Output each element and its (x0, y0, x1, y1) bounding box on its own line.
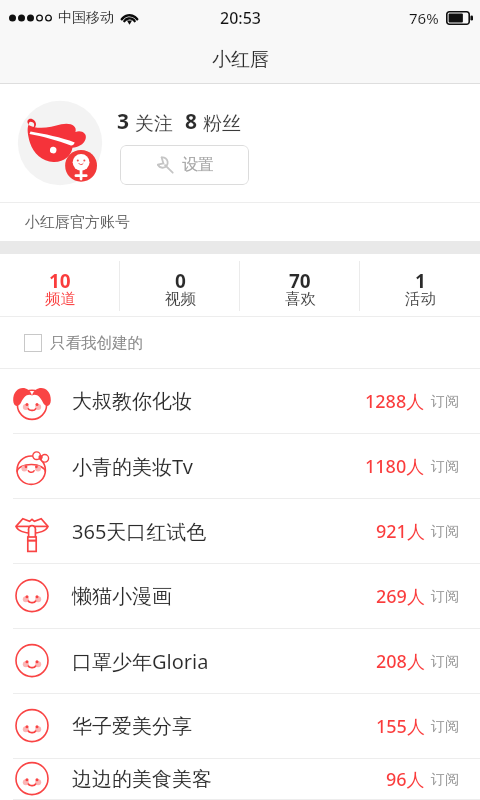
staticText: 921人 (376, 519, 425, 544)
button[interactable]: 10 (0, 254, 120, 317)
staticText: 1180人 (365, 454, 425, 479)
staticText: 口罩少年Gloria (72, 648, 209, 675)
staticText: 中国移动 (58, 9, 114, 27)
staticText: 1288人 (365, 389, 425, 414)
staticText: 订阅 (431, 393, 459, 411)
button[interactable]: 70 (240, 254, 360, 317)
staticText: 76% (409, 8, 439, 28)
staticText: 只看我创建的 (50, 333, 143, 353)
button[interactable]: 365天口红试色 (12, 499, 459, 564)
staticText: 订阅 (431, 458, 459, 476)
staticText: 小红唇官方账号 (25, 213, 130, 232)
staticText: 频道 (45, 289, 76, 309)
staticText: 边边的美食美客 (72, 767, 212, 792)
staticText: 0 (175, 268, 186, 294)
staticText: 关注 (135, 112, 173, 136)
staticText: 活动 (405, 289, 436, 309)
staticText: 华子爱美分享 (72, 714, 192, 739)
button[interactable]: 1 (360, 254, 480, 317)
staticText: 小青的美妆Tv (72, 453, 193, 480)
button[interactable]: 小青的美妆Tv (12, 434, 459, 499)
staticText: 视频 (165, 289, 196, 309)
staticText: 订阅 (431, 588, 459, 606)
staticText: 269人 (376, 584, 425, 609)
staticText: 70 (289, 268, 311, 294)
staticText: 96人 (386, 767, 425, 792)
button[interactable]: 0 (120, 254, 240, 317)
staticText: 20:53 (220, 7, 261, 29)
staticText: 208人 (376, 649, 425, 674)
staticText: 1 (415, 268, 426, 294)
button[interactable]: 大叔教你化妆 (12, 369, 459, 434)
staticText: 365天口红试色 (72, 518, 207, 545)
staticText: 8 (185, 107, 198, 136)
staticText: 订阅 (431, 718, 459, 736)
staticText: 订阅 (431, 523, 459, 541)
staticText: 155人 (376, 714, 425, 739)
button[interactable]: 设置 (120, 145, 249, 185)
button[interactable]: 华子爱美分享 (12, 694, 459, 759)
button[interactable]: 只看我创建的 (24, 317, 480, 369)
staticText: 订阅 (431, 653, 459, 671)
button[interactable]: 口罩少年Gloria (12, 629, 459, 694)
staticText: 懒猫小漫画 (72, 584, 172, 609)
staticText: 大叔教你化妆 (72, 389, 192, 414)
staticText: 3 (117, 107, 130, 136)
staticText: 10 (49, 268, 71, 294)
staticText: 小红唇 (212, 48, 269, 72)
staticText: 粉丝 (203, 112, 241, 136)
button[interactable]: 边边的美食美客 (12, 759, 459, 800)
staticText: 喜欢 (285, 289, 316, 309)
button[interactable]: 懒猫小漫画 (12, 564, 459, 629)
staticText: 订阅 (431, 771, 459, 789)
staticText: 设置 (182, 155, 214, 175)
